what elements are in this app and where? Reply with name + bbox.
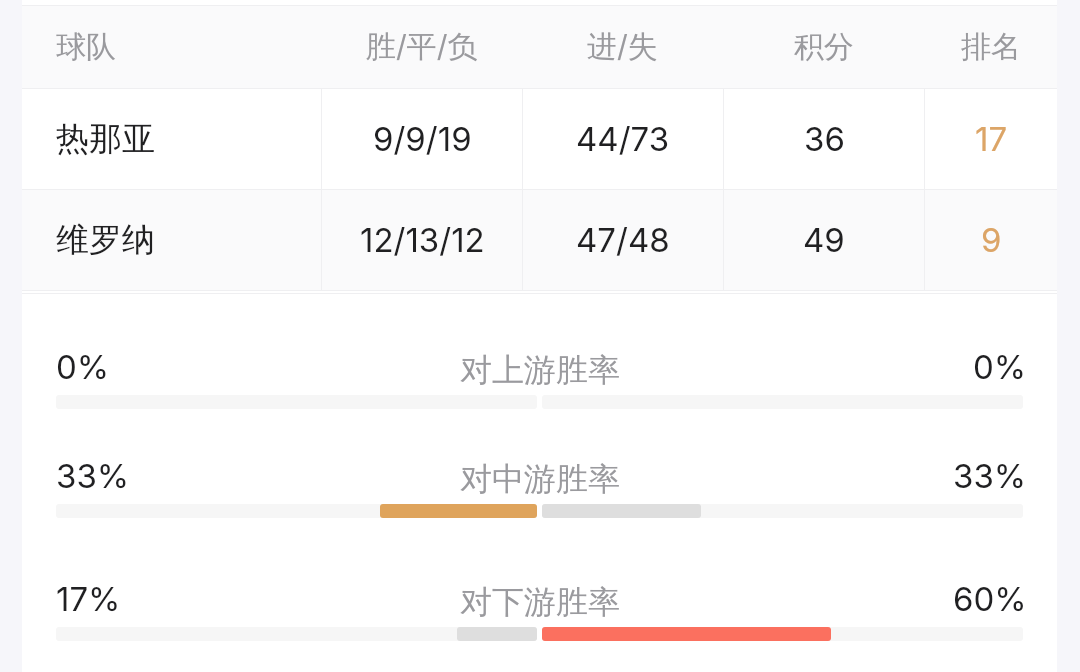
staticText: 17 <box>975 119 1008 159</box>
staticText: 维罗纳 <box>56 219 155 261</box>
staticText: 对下游胜率 <box>460 582 620 622</box>
staticText: 33% <box>953 456 1027 496</box>
staticText: 进/失 <box>587 28 658 66</box>
staticText: 47/48 <box>576 220 670 260</box>
staticText: 60% <box>953 579 1027 619</box>
other: 对下游胜率 <box>56 627 1023 641</box>
staticText: 36 <box>804 119 845 159</box>
button[interactable]: 0% <box>56 347 1023 387</box>
staticText: 热那亚 <box>56 118 155 160</box>
staticText: 9/9/19 <box>373 119 472 159</box>
button[interactable]: 热那亚 <box>22 89 1057 189</box>
staticText: 积分 <box>794 28 854 66</box>
staticText: 9 <box>981 220 1002 260</box>
staticText: 0% <box>56 347 110 387</box>
staticText: 对上游胜率 <box>460 350 620 390</box>
staticText: 33% <box>56 456 130 496</box>
staticText: 49 <box>803 220 845 260</box>
button[interactable]: 33% <box>56 456 1023 496</box>
staticText: 球队 <box>56 28 116 66</box>
staticText: 排名 <box>961 28 1021 66</box>
button[interactable]: 维罗纳 <box>22 190 1057 290</box>
staticText: 44/73 <box>576 119 670 159</box>
staticText: 12/13/12 <box>360 220 485 260</box>
other: 对中游胜率 <box>56 504 1023 518</box>
staticText: 17% <box>56 579 121 619</box>
button[interactable]: 17% <box>56 579 1023 619</box>
staticText: 0% <box>973 347 1027 387</box>
staticText: 胜/平/负 <box>366 28 478 66</box>
staticText: 对中游胜率 <box>460 459 620 499</box>
